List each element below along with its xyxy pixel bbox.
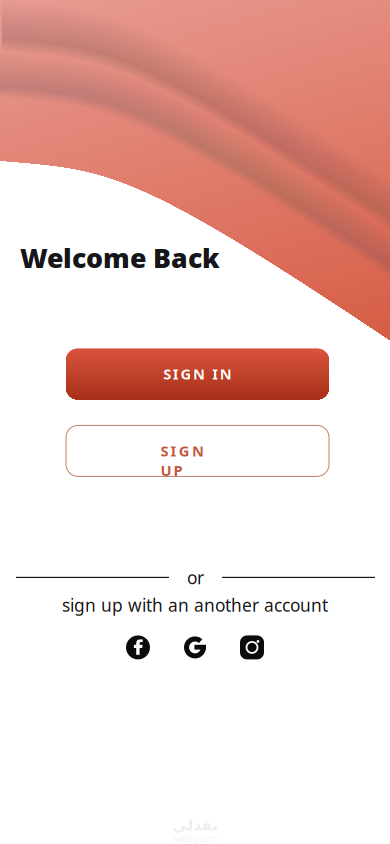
staticText: nafezly.com — [173, 833, 217, 844]
staticText: or — [187, 566, 204, 589]
staticText: sign up with an another account — [62, 593, 328, 616]
staticText: SIGN IN — [163, 364, 232, 384]
button[interactable]: Sign up with Facebook — [126, 635, 150, 659]
staticText: SIGN UP — [160, 441, 235, 461]
button[interactable]: SIGN UP — [66, 425, 329, 476]
button[interactable]: Sign up with Google — [183, 635, 207, 659]
button[interactable]: Sign up with Instagram — [240, 635, 264, 659]
button[interactable]: SIGN IN — [66, 348, 329, 399]
staticText: نفذلي — [172, 817, 218, 833]
staticText: Welcome Back — [20, 240, 220, 275]
